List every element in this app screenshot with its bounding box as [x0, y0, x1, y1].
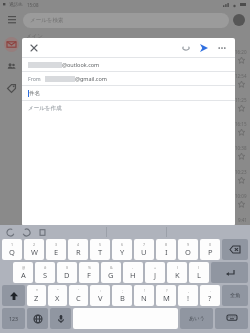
- staticText: A: [21, 270, 26, 280]
- button[interactable]: 16:15: [22, 116, 250, 140]
- button[interactable]: #: [35, 262, 55, 283]
- button[interactable]: Close: [28, 42, 40, 54]
- button[interactable]: Numbers: [2, 308, 25, 329]
- staticText: あいう: [189, 315, 205, 322]
- button[interactable]: 0: [200, 239, 220, 260]
- staticText: From: [28, 75, 41, 82]
- button[interactable]: 6: [112, 239, 132, 260]
- staticText: ": [57, 288, 59, 293]
- button[interactable]: @: [13, 262, 33, 283]
- staticText: 6: [121, 242, 124, 247]
- button[interactable]: Enter: [211, 262, 248, 283]
- button[interactable]: 9:41: [22, 212, 250, 236]
- staticText: H: [130, 270, 136, 280]
- staticText: 全角: [230, 292, 241, 299]
- staticText: 12:54: [235, 73, 247, 79]
- staticText: 11:25: [235, 97, 247, 103]
- button[interactable]: @outlook.com: [22, 58, 235, 71]
- button[interactable]: Voice input: [50, 308, 71, 329]
- button[interactable]: Navigation item: [4, 81, 19, 96]
- button[interactable]: 8: [156, 239, 176, 260]
- button[interactable]: 件名: [22, 86, 235, 100]
- button[interactable]: 2: [24, 239, 44, 260]
- button[interactable]: From: [22, 72, 235, 85]
- button[interactable]: More options: [215, 41, 229, 55]
- staticText: (: [177, 265, 179, 270]
- button[interactable]: Menu: [5, 13, 19, 27]
- button[interactable]: 9: [178, 239, 198, 260]
- button[interactable]: *: [27, 285, 46, 306]
- button[interactable]: (: [167, 262, 187, 283]
- button[interactable]: Shift: [2, 285, 25, 306]
- button[interactable]: Japanese input: [180, 308, 213, 329]
- button[interactable]: Send: [197, 41, 211, 55]
- button[interactable]: 16:20: [22, 44, 250, 68]
- staticText: V: [98, 293, 103, 303]
- button[interactable]: メールを作成: [22, 101, 235, 226]
- button[interactable]: 3: [46, 239, 66, 260]
- staticText: C: [76, 293, 81, 303]
- button[interactable]: 4: [68, 239, 88, 260]
- button[interactable]: Language: [27, 308, 48, 329]
- button[interactable]: +: [145, 262, 165, 283]
- button[interactable]: Undo: [6, 228, 15, 237]
- staticText: Q: [9, 247, 15, 257]
- button[interactable]: :: [90, 285, 110, 306]
- staticText: R: [76, 247, 81, 257]
- staticText: 7: [143, 242, 146, 247]
- button[interactable]: -: [123, 262, 143, 283]
- staticText: E: [54, 247, 59, 257]
- staticText: Y: [120, 247, 125, 257]
- staticText: ,: [188, 288, 189, 293]
- button[interactable]: Full width: [222, 285, 248, 306]
- staticText: L: [197, 270, 201, 280]
- button[interactable]: Redo: [22, 228, 31, 237]
- button[interactable]: .: [200, 285, 220, 306]
- button[interactable]: ': [69, 285, 88, 306]
- button[interactable]: $: [57, 262, 77, 283]
- staticText: 5: [99, 242, 102, 247]
- button[interactable]: 11:25: [22, 92, 250, 116]
- button[interactable]: !: [134, 285, 154, 306]
- button[interactable]: 10:38: [22, 140, 250, 164]
- button[interactable]: 5: [90, 239, 110, 260]
- button[interactable]: Navigation item: [4, 37, 19, 52]
- button[interactable]: ;: [112, 285, 132, 306]
- staticText: ': [78, 288, 79, 293]
- staticText: ;: [122, 288, 123, 293]
- staticText: :: [100, 288, 101, 293]
- button[interactable]: Backspace: [222, 239, 248, 260]
- staticText: メールを検索: [30, 17, 64, 24]
- button[interactable]: Account: [233, 14, 245, 26]
- button[interactable]: Navigation item: [4, 59, 19, 74]
- staticText: !: [187, 293, 190, 303]
- staticText: X: [55, 293, 60, 303]
- button[interactable]: ?: [156, 285, 176, 306]
- staticText: K: [175, 270, 180, 280]
- button[interactable]: 10:23: [22, 164, 250, 188]
- button[interactable]: ): [189, 262, 209, 283]
- staticText: #: [44, 265, 47, 270]
- staticText: 10:23: [235, 169, 247, 175]
- button[interactable]: Hide keyboard: [215, 308, 248, 329]
- button[interactable]: 7: [134, 239, 154, 260]
- button[interactable]: %: [79, 262, 99, 283]
- staticText: T: [98, 247, 103, 257]
- button[interactable]: ,: [178, 285, 198, 306]
- button[interactable]: &: [101, 262, 121, 283]
- staticText: *: [36, 288, 38, 293]
- button[interactable]: Clipboard: [38, 228, 47, 237]
- staticText: O: [185, 247, 191, 257]
- button[interactable]: メールを検索: [23, 13, 229, 28]
- staticText: $: [66, 265, 69, 270]
- staticText: メールを作成: [28, 105, 62, 112]
- staticText: 0: [209, 242, 212, 247]
- button[interactable]: 12:54: [22, 68, 250, 92]
- staticText: I: [165, 247, 168, 257]
- button[interactable]: ": [48, 285, 67, 306]
- staticText: J: [154, 270, 157, 280]
- button[interactable]: 1: [2, 239, 22, 260]
- button[interactable]: Attach file: [179, 41, 193, 55]
- button[interactable]: 10:09: [22, 188, 250, 212]
